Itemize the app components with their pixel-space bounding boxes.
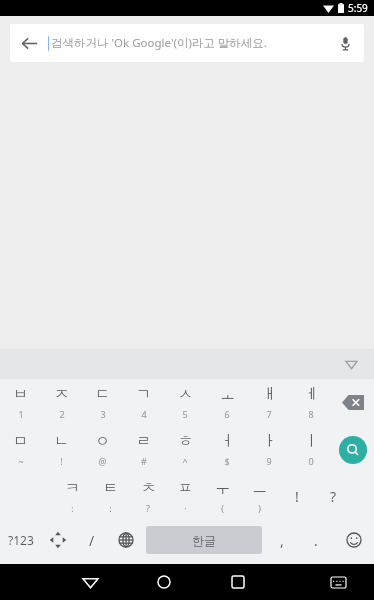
staticText: ㄹ <box>136 432 151 451</box>
button[interactable]: . <box>299 520 333 560</box>
button[interactable]: Change language <box>109 520 143 560</box>
staticText: ㄴ <box>54 432 69 451</box>
staticText: · <box>184 502 187 514</box>
staticText: 7 <box>266 408 272 420</box>
staticText: ㅓ <box>220 432 235 451</box>
staticText: 6 <box>224 408 230 420</box>
staticText: 4 <box>141 408 147 420</box>
button[interactable]: ㅎ <box>164 426 206 473</box>
staticText: $ <box>224 455 230 467</box>
button[interactable]: ㅇ <box>82 426 123 473</box>
button[interactable]: ㄹ <box>123 426 164 473</box>
staticText: ㅡ <box>252 479 267 498</box>
staticText: ㅈ <box>54 385 69 404</box>
button[interactable]: Home <box>127 564 201 600</box>
staticText: ㅇ <box>95 432 110 451</box>
button[interactable]: ㅁ <box>0 426 41 473</box>
button[interactable]: ㅣ <box>290 426 332 473</box>
button[interactable]: ㅔ <box>290 379 332 426</box>
staticText: ㅌ <box>103 479 118 498</box>
staticText: # <box>141 455 147 467</box>
staticText: ~ <box>18 455 24 467</box>
staticText: , <box>280 531 284 550</box>
button[interactable]: Back <box>10 24 48 62</box>
button[interactable]: Voice search <box>326 24 364 62</box>
staticText: ! <box>295 487 299 506</box>
button[interactable]: ㅋ <box>53 473 91 520</box>
staticText: ㅔ <box>304 385 319 404</box>
button[interactable]: Back <box>53 564 127 600</box>
staticText: 5:59 <box>348 1 368 15</box>
button[interactable]: Hide keyboard <box>338 351 364 377</box>
button[interactable]: 한글 <box>146 526 262 554</box>
button[interactable]: ㅅ <box>164 379 206 426</box>
button[interactable]: Back <box>10 24 364 62</box>
button[interactable]: , <box>265 520 299 560</box>
staticText: ^ <box>182 455 188 467</box>
staticText: ㅋ <box>65 479 80 498</box>
staticText: : <box>109 502 112 514</box>
staticText: 9 <box>266 455 272 467</box>
staticText: ㅅ <box>178 385 193 404</box>
staticText: 3 <box>100 408 106 420</box>
staticText: ㄱ <box>136 385 151 404</box>
staticText: : <box>71 502 74 514</box>
button[interactable]: ? <box>315 473 352 520</box>
staticText: @ <box>98 455 107 467</box>
button[interactable]: ㅂ <box>0 379 41 426</box>
staticText: ! <box>60 455 63 467</box>
button[interactable]: ㄴ <box>41 426 82 473</box>
staticText: ㅜ <box>215 479 230 498</box>
button[interactable]: ?123 <box>0 520 41 560</box>
staticText: ㅐ <box>262 385 277 404</box>
button[interactable]: / <box>75 520 109 560</box>
staticText: 검색하거나 'Ok Google'(이)라고 말하세요. <box>51 35 326 51</box>
button[interactable]: ㄷ <box>82 379 123 426</box>
staticText: ㄷ <box>95 385 110 404</box>
staticText: ( <box>221 502 224 514</box>
staticText: ㅣ <box>304 432 319 451</box>
staticText: ? <box>330 487 337 506</box>
staticText: / <box>89 531 95 550</box>
button[interactable]: ㅓ <box>206 426 248 473</box>
button[interactable]: ㅊ <box>129 473 167 520</box>
staticText: . <box>314 531 318 550</box>
button[interactable]: ㅍ <box>167 473 204 520</box>
staticText: ㅍ <box>178 479 193 498</box>
staticText: 1 <box>18 408 24 420</box>
button[interactable]: ㄱ <box>123 379 164 426</box>
staticText: ? <box>146 502 150 514</box>
staticText: ㅁ <box>13 432 28 451</box>
button[interactable]: ㅏ <box>248 426 290 473</box>
button[interactable]: Recents <box>201 564 275 600</box>
staticText: ㅗ <box>220 385 235 404</box>
button[interactable]: ㅗ <box>206 379 248 426</box>
staticText: 5 <box>182 408 188 420</box>
staticText: 2 <box>59 408 65 420</box>
button[interactable]: Backspace <box>332 379 374 426</box>
staticText: 한글 <box>192 533 216 548</box>
staticText: ㅊ <box>141 479 156 498</box>
staticText: 0 <box>308 455 314 467</box>
button[interactable]: Switch keyboard <box>307 564 370 600</box>
button[interactable]: ㅈ <box>41 379 82 426</box>
staticText: ㅎ <box>178 432 193 451</box>
staticText: ㅂ <box>13 385 28 404</box>
button[interactable]: Emoji <box>333 520 374 560</box>
staticText: ㅏ <box>262 432 277 451</box>
button[interactable]: Arrow keys <box>41 520 75 560</box>
button[interactable]: ㅜ <box>204 473 241 520</box>
staticText: 8 <box>308 408 314 420</box>
button[interactable]: ㅐ <box>248 379 290 426</box>
button[interactable]: ㅌ <box>91 473 129 520</box>
button[interactable]: Search <box>332 426 374 473</box>
staticText: ) <box>258 502 261 514</box>
staticText: ?123 <box>8 532 34 548</box>
button[interactable]: ㅡ <box>241 473 278 520</box>
button[interactable]: ! <box>278 473 315 520</box>
